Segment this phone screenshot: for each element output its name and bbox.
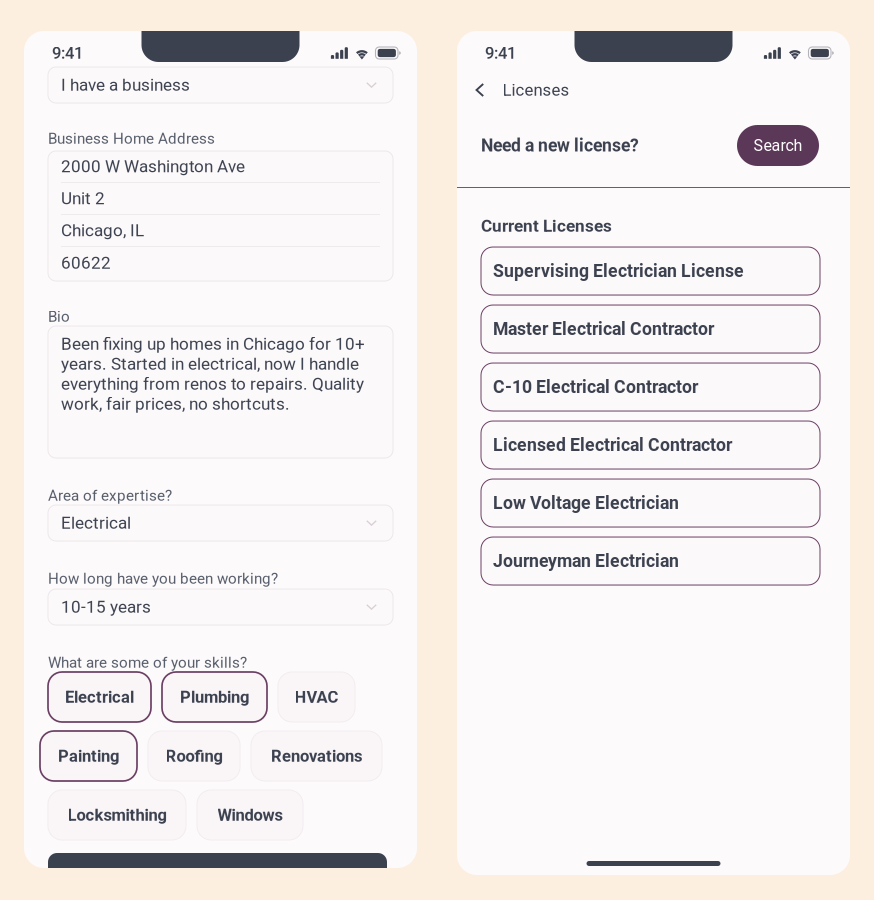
staticText: 9:41 bbox=[52, 43, 83, 63]
staticText: Locksmithing bbox=[67, 805, 166, 825]
staticText: Painting bbox=[58, 746, 119, 766]
staticText: Licenses bbox=[502, 80, 569, 100]
staticText: Electrical bbox=[65, 687, 134, 707]
staticText: Bio bbox=[48, 308, 70, 325]
button[interactable]: Windows bbox=[197, 790, 303, 840]
button[interactable]: Renovations bbox=[251, 731, 382, 781]
staticText: 2000 W Washington Ave bbox=[61, 156, 245, 176]
button[interactable]: Supervising Electrician License bbox=[481, 247, 820, 295]
staticText: Electrical bbox=[61, 513, 131, 533]
button[interactable]: Roofing bbox=[148, 731, 240, 781]
button[interactable]: Journeyman Electrician bbox=[481, 537, 820, 585]
button[interactable] bbox=[48, 853, 387, 897]
staticText: Need a new license? bbox=[481, 135, 639, 156]
staticText: Area of expertise? bbox=[48, 487, 172, 504]
button[interactable]: Low Voltage Electrician bbox=[481, 479, 820, 527]
button[interactable]: Electrical bbox=[48, 672, 151, 722]
staticText: C-10 Electrical Contractor bbox=[493, 377, 698, 397]
button[interactable]: Licensed Electrical Contractor bbox=[481, 421, 820, 469]
staticText: I have a business bbox=[61, 75, 190, 95]
staticText: Licensed Electrical Contractor bbox=[493, 435, 732, 455]
staticText: Unit 2 bbox=[61, 188, 105, 208]
staticText: 10-15 years bbox=[61, 597, 151, 617]
staticText: Supervising Electrician License bbox=[493, 261, 744, 281]
staticText: Business Home Address bbox=[48, 130, 215, 147]
staticText: Windows bbox=[217, 805, 282, 825]
button[interactable]: Electrical bbox=[48, 505, 393, 541]
staticText: HVAC bbox=[294, 687, 338, 707]
button[interactable]: Licenses bbox=[457, 77, 850, 103]
staticText: How long have you been working? bbox=[48, 570, 278, 587]
staticText: Chicago, IL bbox=[61, 220, 144, 240]
staticText: What are some of your skills? bbox=[48, 654, 247, 671]
button[interactable]: HVAC bbox=[278, 672, 355, 722]
button[interactable]: C-10 Electrical Contractor bbox=[481, 363, 820, 411]
button[interactable]: Plumbing bbox=[162, 672, 267, 722]
staticText: 60622 bbox=[61, 253, 111, 273]
button[interactable]: 10-15 years bbox=[48, 589, 393, 625]
staticText: Low Voltage Electrician bbox=[493, 493, 679, 513]
button[interactable]: Locksmithing bbox=[48, 790, 186, 840]
button[interactable]: Search bbox=[737, 125, 819, 166]
staticText: Plumbing bbox=[180, 687, 249, 707]
button[interactable]: Master Electrical Contractor bbox=[481, 305, 820, 353]
staticText: Master Electrical Contractor bbox=[493, 319, 714, 339]
button[interactable]: Painting bbox=[40, 731, 137, 781]
staticText: Roofing bbox=[165, 746, 222, 766]
staticText: Renovations bbox=[271, 746, 362, 766]
staticText: Search bbox=[753, 136, 802, 155]
staticText: Been fixing up homes in Chicago for 10+ … bbox=[61, 334, 365, 414]
staticText: Journeyman Electrician bbox=[493, 551, 679, 571]
staticText: Current Licenses bbox=[481, 216, 612, 236]
button[interactable]: I have a business bbox=[48, 67, 393, 103]
staticText: 9:41 bbox=[485, 43, 516, 63]
